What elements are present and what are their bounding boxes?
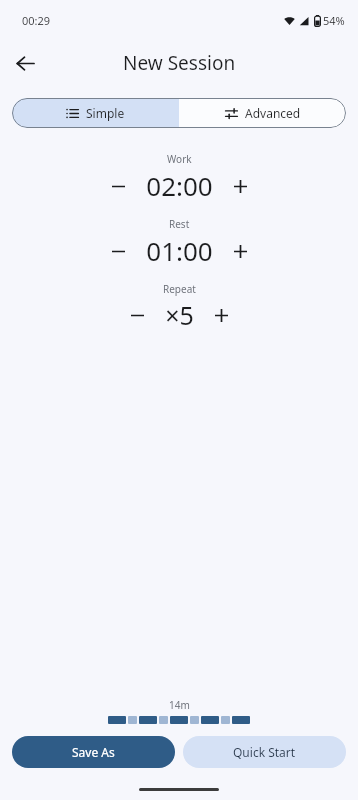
button[interactable]: Save As (12, 736, 175, 768)
staticText: 00:29 (22, 13, 51, 28)
staticText: Work (167, 152, 192, 166)
button[interactable]: Back (5, 43, 45, 83)
button[interactable]: Increase Work (223, 169, 257, 203)
button[interactable]: Simple (12, 98, 179, 128)
button[interactable]: Advanced (179, 98, 346, 128)
button[interactable]: Decrease Rest (101, 234, 135, 268)
button[interactable]: Decrease Repeat (120, 298, 154, 332)
button[interactable]: Increase Rest (223, 234, 257, 268)
staticText: 14m (169, 698, 190, 712)
button[interactable]: Increase Repeat (204, 298, 238, 332)
staticText: Simple (86, 105, 125, 121)
staticText: Rest (169, 217, 190, 231)
staticText: Quick Start (233, 744, 296, 760)
staticText: Repeat (163, 282, 196, 296)
staticText: Save As (72, 744, 115, 760)
staticText: 02:00 (146, 168, 213, 203)
staticText: New Session (123, 50, 236, 76)
button[interactable]: Quick Start (183, 736, 346, 768)
staticText: ×5 (165, 298, 194, 332)
button[interactable]: Decrease Work (101, 169, 135, 203)
staticText: Advanced (245, 105, 301, 121)
staticText: 01:00 (146, 233, 213, 268)
staticText: 54% (323, 13, 345, 28)
